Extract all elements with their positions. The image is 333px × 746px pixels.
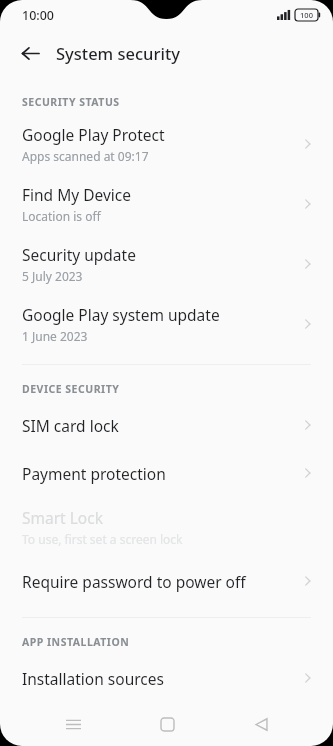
button[interactable]: SIM card lock [0,401,333,449]
button[interactable]: Require password to power off [0,557,333,605]
staticText: Installation sources [22,668,299,689]
staticText: System security [56,42,180,64]
button[interactable]: Security update [0,234,333,294]
button[interactable]: Find My Device [0,174,333,234]
button[interactable]: Home [145,702,189,746]
button[interactable]: Google Play Protect [0,114,333,174]
staticText: 100 [300,10,313,20]
staticText: SIM card lock [22,415,299,436]
staticText: SECURITY STATUS [22,95,120,109]
staticText: To use, first set a screen lock [22,531,183,547]
staticText: 5 July 2023 [22,268,83,284]
staticText: Find My Device [22,184,131,205]
button[interactable]: Back [12,35,48,71]
staticText: 1 June 2023 [22,328,88,344]
staticText: Security update [22,244,136,265]
staticText: Apps scanned at 09:17 [22,148,149,164]
button[interactable]: Recent apps [51,702,95,746]
staticText: DEVICE SECURITY [22,382,120,396]
button[interactable]: Smart Lock [0,497,333,557]
button[interactable]: Installation sources [0,654,333,702]
staticText: Location is off [22,208,101,224]
button[interactable]: Payment protection [0,449,333,497]
button[interactable]: Back [239,702,283,746]
button[interactable]: Google Play system update [0,294,333,354]
staticText: 10:00 [22,7,55,24]
staticText: Smart Lock [22,507,103,528]
staticText: Google Play Protect [22,124,165,145]
staticText: Google Play system update [22,304,220,325]
staticText: Payment protection [22,463,299,484]
staticText: APP INSTALLATION [22,635,130,649]
staticText: Require password to power off [22,571,299,592]
